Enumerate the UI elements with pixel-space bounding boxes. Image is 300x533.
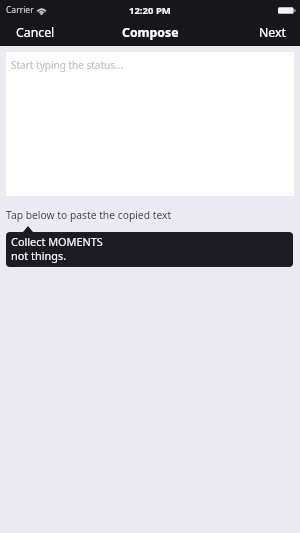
staticText: Tap below to paste the copied text xyxy=(6,208,172,222)
button[interactable]: Collect MOMENTS not things. xyxy=(6,232,293,267)
staticText: Compose xyxy=(122,24,179,41)
staticText: Next xyxy=(259,24,286,40)
staticText: Cancel xyxy=(16,24,55,40)
staticText: Collect MOMENTS not things. xyxy=(11,234,103,263)
staticText: Carrier xyxy=(6,4,34,16)
other: Wi-Fi signal xyxy=(36,6,47,15)
button[interactable]: Next xyxy=(245,19,300,45)
button[interactable]: Cancel xyxy=(0,19,71,45)
staticText: Start typing the status... xyxy=(11,58,124,72)
other: Battery full xyxy=(278,6,295,15)
staticText: 12:20 PM xyxy=(129,4,171,17)
button[interactable]: Start typing the status... xyxy=(6,52,294,196)
